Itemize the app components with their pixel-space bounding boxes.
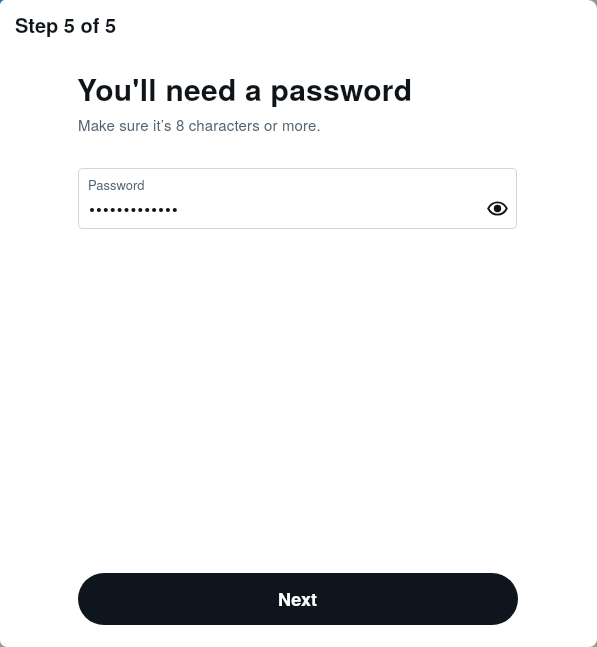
button[interactable]: Password xyxy=(78,168,517,229)
staticText: Make sure it’s 8 characters or more. xyxy=(78,114,321,135)
staticText: You'll need a password xyxy=(77,67,413,110)
staticText: Next xyxy=(278,586,318,612)
staticText: Password xyxy=(88,175,145,194)
staticText: Step 5 of 5 xyxy=(15,10,117,39)
button[interactable]: Show password xyxy=(481,192,513,224)
button[interactable]: Next xyxy=(78,573,518,625)
